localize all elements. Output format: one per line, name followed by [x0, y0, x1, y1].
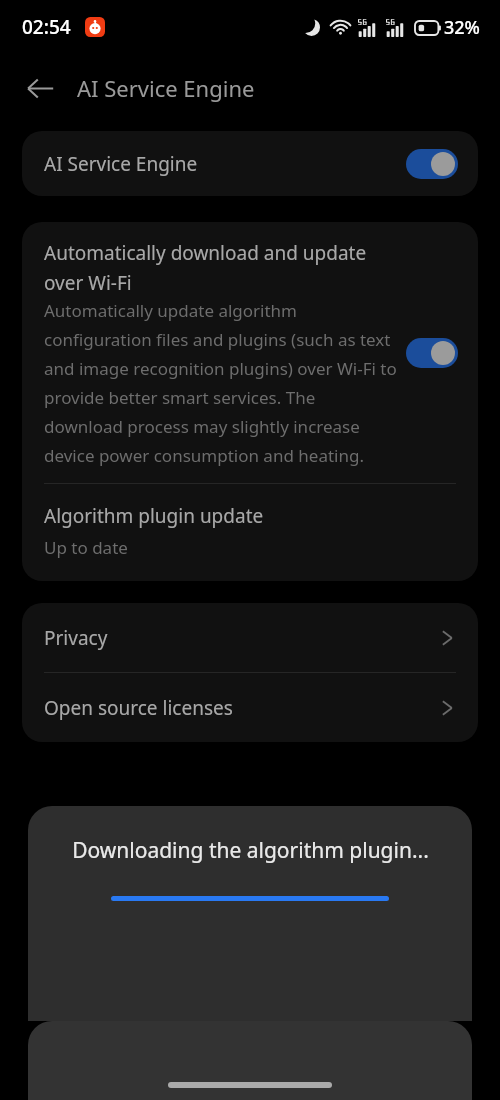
- staticText: Up to date: [44, 536, 128, 559]
- staticText: Automatically download and update over W…: [44, 240, 398, 295]
- staticText: Automatically update algorithm configura…: [44, 299, 398, 467]
- button[interactable]: Privacy: [22, 603, 478, 672]
- staticText: 32%: [444, 15, 480, 40]
- staticText: Privacy: [44, 625, 108, 651]
- button[interactable]: Automatically download and update over W…: [22, 222, 478, 483]
- staticText: Open source licenses: [44, 695, 233, 721]
- button[interactable]: Open source licenses: [22, 673, 478, 742]
- staticText: AI Service Engine: [44, 151, 198, 177]
- staticText: Downloading the algorithm plugin...: [72, 836, 429, 865]
- button[interactable]: Toggle: [406, 338, 458, 368]
- button[interactable]: Algorithm plugin update: [22, 484, 478, 581]
- button[interactable]: AI Service Engine: [22, 131, 478, 196]
- staticText: 02:54: [22, 14, 71, 40]
- button[interactable]: Toggle: [406, 149, 458, 179]
- staticText: AI Service Engine: [77, 73, 255, 103]
- button[interactable]: Back: [14, 62, 66, 114]
- staticText: Algorithm plugin update: [44, 503, 264, 529]
